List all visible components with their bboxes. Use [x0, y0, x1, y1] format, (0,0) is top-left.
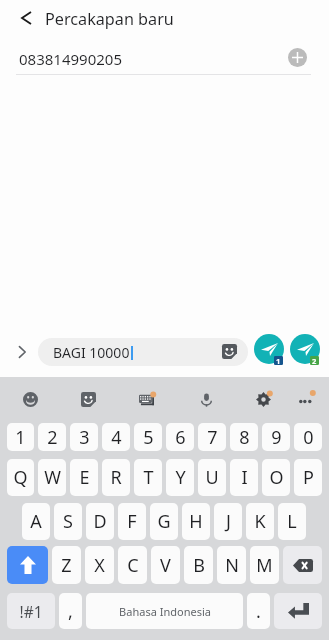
staticText: ,	[68, 599, 73, 624]
button[interactable]: Stickers	[71, 382, 105, 416]
button[interactable]: 5	[134, 423, 162, 451]
staticText: J	[226, 509, 231, 534]
button[interactable]: Show more options	[8, 338, 36, 366]
button[interactable]: Add recipient	[288, 48, 307, 67]
staticText: Y	[175, 465, 186, 490]
staticText: 6	[175, 425, 186, 450]
button[interactable]: V	[151, 546, 180, 584]
button[interactable]: U	[198, 459, 226, 496]
button[interactable]: Send with SIM 1	[254, 334, 284, 364]
staticText: H	[189, 509, 203, 534]
button[interactable]: !#1	[7, 593, 55, 629]
button[interactable]: D	[86, 503, 114, 540]
button[interactable]: T	[134, 459, 162, 496]
button[interactable]: Send with SIM 2	[290, 334, 320, 364]
staticText: P	[303, 465, 314, 490]
staticText: N	[225, 553, 239, 578]
button[interactable]: A	[22, 503, 50, 540]
button[interactable]: 0	[294, 423, 322, 451]
button[interactable]: BAGI 10000	[38, 338, 248, 366]
button[interactable]: X	[85, 546, 114, 584]
button[interactable]: Z	[52, 546, 81, 584]
button[interactable]: 6	[166, 423, 194, 451]
staticText: 9	[271, 425, 282, 450]
staticText: K	[254, 509, 266, 534]
button[interactable]: F	[118, 503, 146, 540]
staticText: 083814990205	[19, 49, 122, 69]
staticText: T	[143, 465, 154, 490]
staticText: 1	[276, 356, 281, 365]
button[interactable]: J	[214, 503, 242, 540]
staticText: !#1	[19, 601, 43, 622]
staticText: 1	[15, 425, 26, 450]
staticText: Z	[61, 553, 72, 578]
button[interactable]: Settings	[246, 382, 280, 416]
button[interactable]: R	[102, 459, 130, 496]
staticText: R	[110, 465, 122, 490]
staticText: Bahasa Indonesia	[119, 604, 211, 619]
button[interactable]: Q	[7, 459, 34, 496]
button[interactable]: 9	[262, 423, 290, 451]
button[interactable]: E	[70, 459, 98, 496]
staticText: O	[269, 465, 284, 490]
staticText: B	[193, 553, 205, 578]
staticText: 7	[207, 425, 218, 450]
button[interactable]: Enter	[274, 593, 322, 629]
button[interactable]: .	[247, 593, 270, 629]
staticText: BAGI 10000	[53, 343, 130, 362]
staticText: M	[256, 553, 273, 578]
button[interactable]: Voice input	[189, 382, 223, 416]
button[interactable]: 7	[198, 423, 226, 451]
staticText: Q	[13, 465, 28, 490]
button[interactable]: Keyboard modes	[129, 382, 163, 416]
staticText: C	[127, 553, 139, 578]
button[interactable]: 2	[38, 423, 66, 451]
button[interactable]: 3	[70, 423, 98, 451]
staticText: 4	[111, 425, 122, 450]
button[interactable]: I	[230, 459, 258, 496]
staticText: .	[256, 599, 261, 624]
button[interactable]: Back	[8, 0, 44, 36]
button[interactable]: Backspace	[283, 546, 322, 584]
button[interactable]: More options	[289, 382, 323, 416]
staticText: A	[30, 509, 42, 534]
staticText: S	[63, 509, 73, 534]
staticText: Percakapan baru	[45, 8, 174, 30]
staticText: 2	[47, 425, 58, 450]
button[interactable]: H	[182, 503, 210, 540]
button[interactable]: Emoji	[13, 382, 47, 416]
button[interactable]: Y	[166, 459, 194, 496]
staticText: U	[205, 465, 219, 490]
staticText: 2	[312, 356, 317, 365]
button[interactable]: L	[278, 503, 306, 540]
staticText: 0	[303, 425, 314, 450]
staticText: 5	[143, 425, 154, 450]
staticText: 8	[239, 425, 250, 450]
staticText: X	[94, 553, 105, 578]
button[interactable]: O	[262, 459, 290, 496]
button[interactable]: N	[217, 546, 246, 584]
button[interactable]: K	[246, 503, 274, 540]
button[interactable]: 4	[102, 423, 130, 451]
staticText: V	[160, 553, 171, 578]
button[interactable]: W	[38, 459, 66, 496]
staticText: L	[287, 509, 297, 534]
button[interactable]: Shift	[7, 546, 48, 584]
button[interactable]: B	[184, 546, 213, 584]
button[interactable]: S	[54, 503, 82, 540]
button[interactable]: C	[118, 546, 147, 584]
staticText: E	[79, 465, 90, 490]
button[interactable]: 8	[230, 423, 258, 451]
staticText: 3	[79, 425, 90, 450]
button[interactable]: ,	[59, 593, 82, 629]
staticText: W	[44, 465, 61, 490]
staticText: G	[157, 509, 171, 534]
staticText: I	[241, 465, 248, 490]
staticText: F	[127, 509, 137, 534]
staticText: D	[93, 509, 107, 534]
button[interactable]: M	[250, 546, 279, 584]
button[interactable]: G	[150, 503, 178, 540]
button[interactable]: 1	[7, 423, 34, 451]
button[interactable]: Bahasa Indonesia	[86, 593, 243, 629]
button[interactable]: P	[294, 459, 322, 496]
